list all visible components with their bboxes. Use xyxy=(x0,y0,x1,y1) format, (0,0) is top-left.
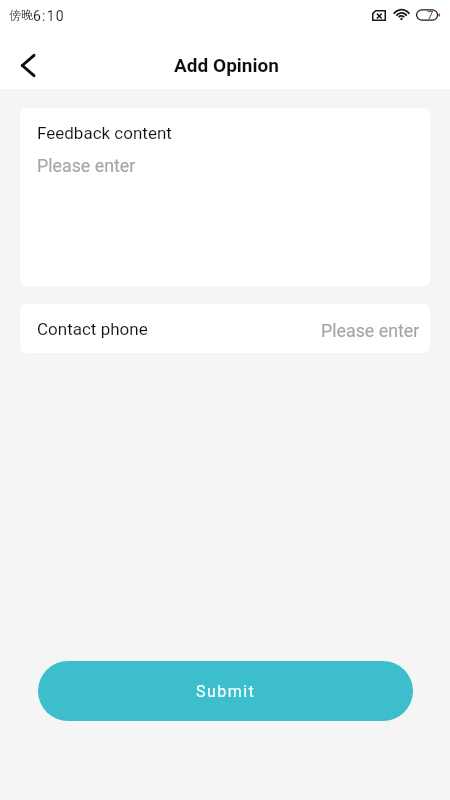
button[interactable]: Contact phone xyxy=(20,304,430,353)
staticText: 7 xyxy=(427,8,434,20)
staticText: Add Opinion xyxy=(174,54,279,76)
staticText: Please enter xyxy=(321,320,420,341)
staticText: Contact phone xyxy=(37,319,148,339)
staticText: Feedback content xyxy=(37,123,172,143)
staticText: Please enter xyxy=(37,155,136,176)
staticText: 傍晚 xyxy=(9,7,33,22)
staticText: 6:10 xyxy=(33,8,65,24)
staticText: Submit xyxy=(196,682,256,701)
button[interactable]: Submit xyxy=(38,661,413,721)
button[interactable]: Feedback content xyxy=(20,108,430,286)
button[interactable]: Back xyxy=(7,45,48,86)
